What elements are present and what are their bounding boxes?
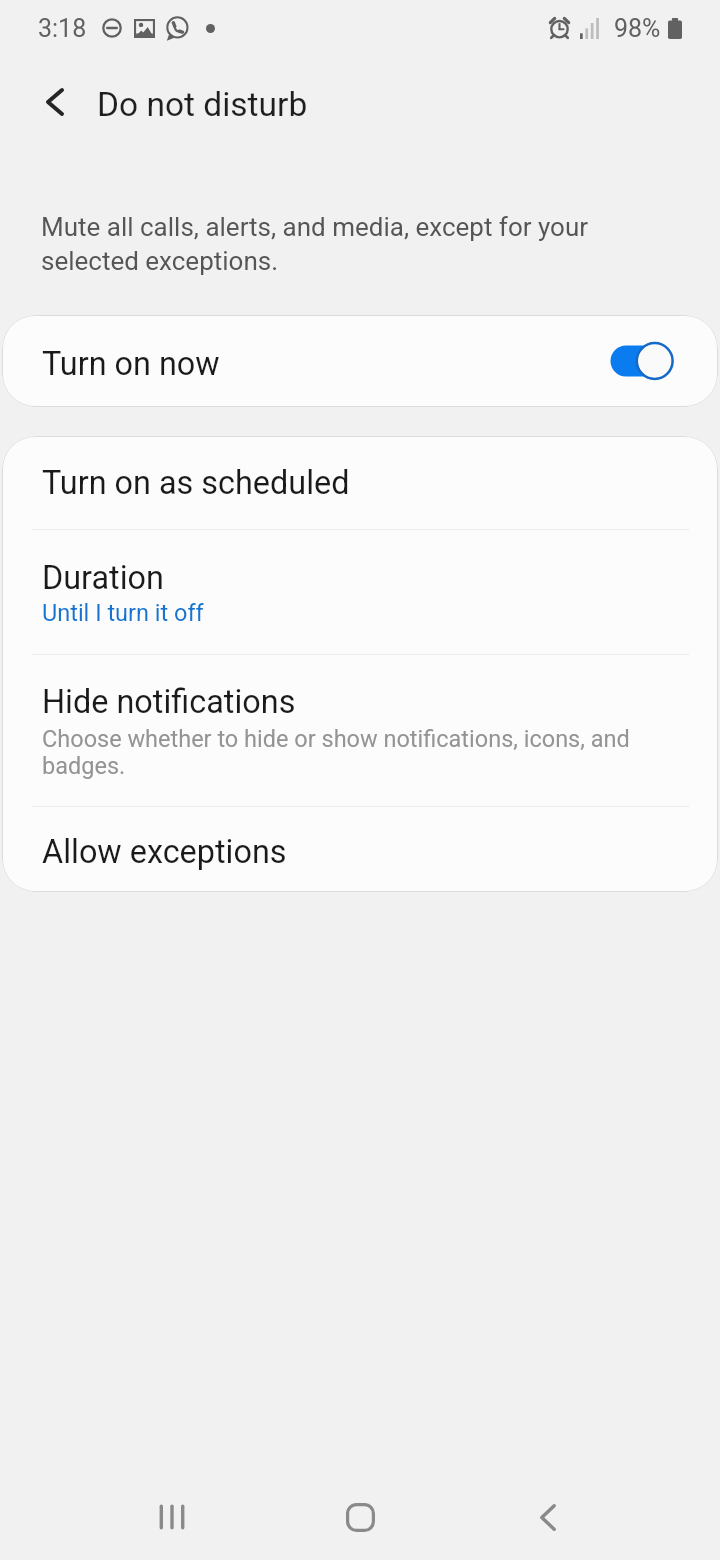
button[interactable]: Turn on now	[606, 335, 682, 387]
button[interactable]: Back	[454, 1474, 642, 1560]
button[interactable]: Allow exceptions	[2, 807, 718, 892]
staticText: Mute all calls, alerts, and media, excep…	[41, 209, 589, 277]
staticText: Turn on now	[42, 345, 220, 383]
button[interactable]: Duration	[2, 530, 718, 654]
button[interactable]: Home	[266, 1474, 454, 1560]
staticText: Duration	[42, 559, 164, 597]
button[interactable]: Turn on now	[2, 315, 718, 407]
staticText: Until I turn it off	[42, 599, 204, 627]
staticText: Do not disturb	[97, 85, 308, 124]
staticText: Hide notifications	[42, 683, 296, 721]
button[interactable]: Navigate up	[23, 70, 87, 134]
staticText: Allow exceptions	[42, 833, 287, 871]
staticText: 3:18	[38, 14, 87, 43]
button[interactable]: Recent apps	[78, 1474, 266, 1560]
button[interactable]: Turn on as scheduled	[2, 436, 718, 529]
staticText: Turn on as scheduled	[42, 464, 350, 502]
staticText: Choose whether to hide or show notificat…	[42, 725, 680, 779]
button[interactable]: Hide notifications	[2, 655, 718, 806]
staticText: 98%	[614, 14, 661, 43]
